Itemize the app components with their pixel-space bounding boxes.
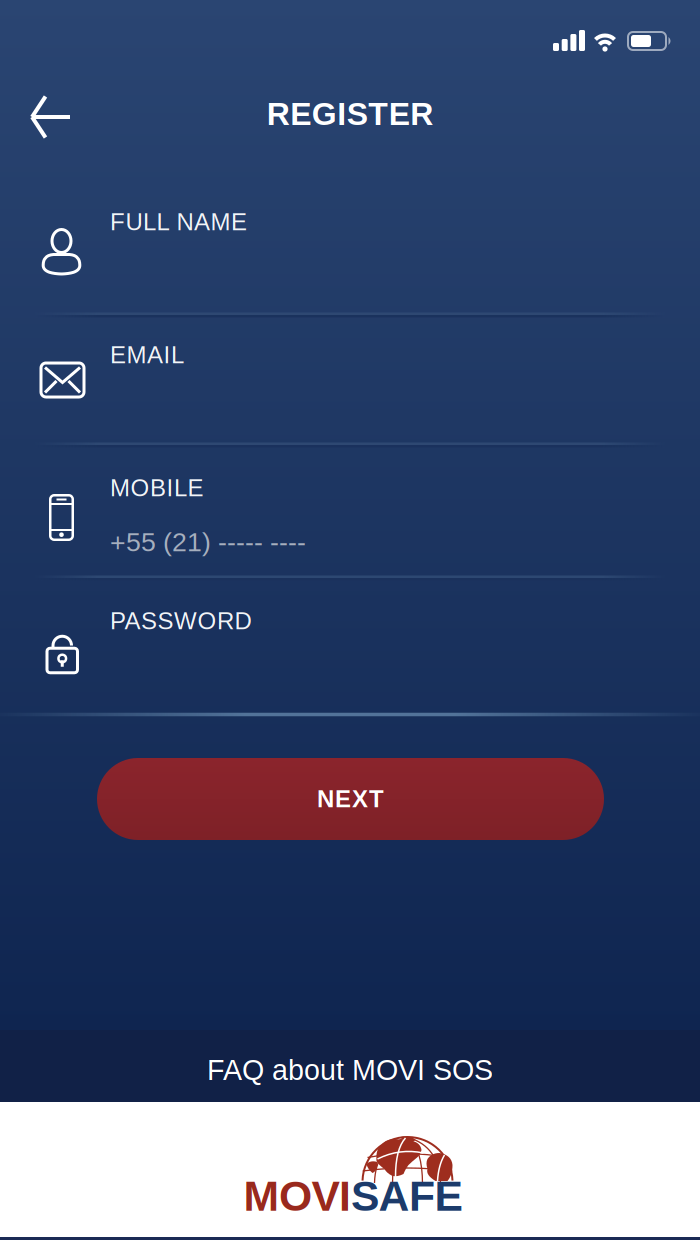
button[interactable]: EMAIL: [0, 316, 700, 443]
button[interactable]: MOBILE: [0, 446, 700, 577]
staticText: +55 (21) ----- ----: [110, 527, 306, 557]
staticText: EMAIL: [110, 342, 184, 368]
staticText: NEXT: [317, 786, 384, 812]
button[interactable]: [20, 82, 90, 152]
staticText: FULL NAME: [110, 209, 247, 235]
staticText: MOVI: [243, 1172, 351, 1220]
button[interactable]: FAQ about MOVI SOS: [0, 1030, 700, 1102]
button[interactable]: PASSWORD: [0, 578, 700, 714]
staticText: MOBILE: [110, 475, 203, 501]
button[interactable]: NEXT: [97, 758, 604, 840]
staticText: SAFE: [351, 1172, 462, 1220]
staticText: PASSWORD: [110, 608, 251, 634]
staticText: FAQ about MOVI SOS: [207, 1054, 493, 1086]
button[interactable]: FULL NAME: [0, 155, 700, 313]
staticText: REGISTER: [267, 96, 433, 132]
